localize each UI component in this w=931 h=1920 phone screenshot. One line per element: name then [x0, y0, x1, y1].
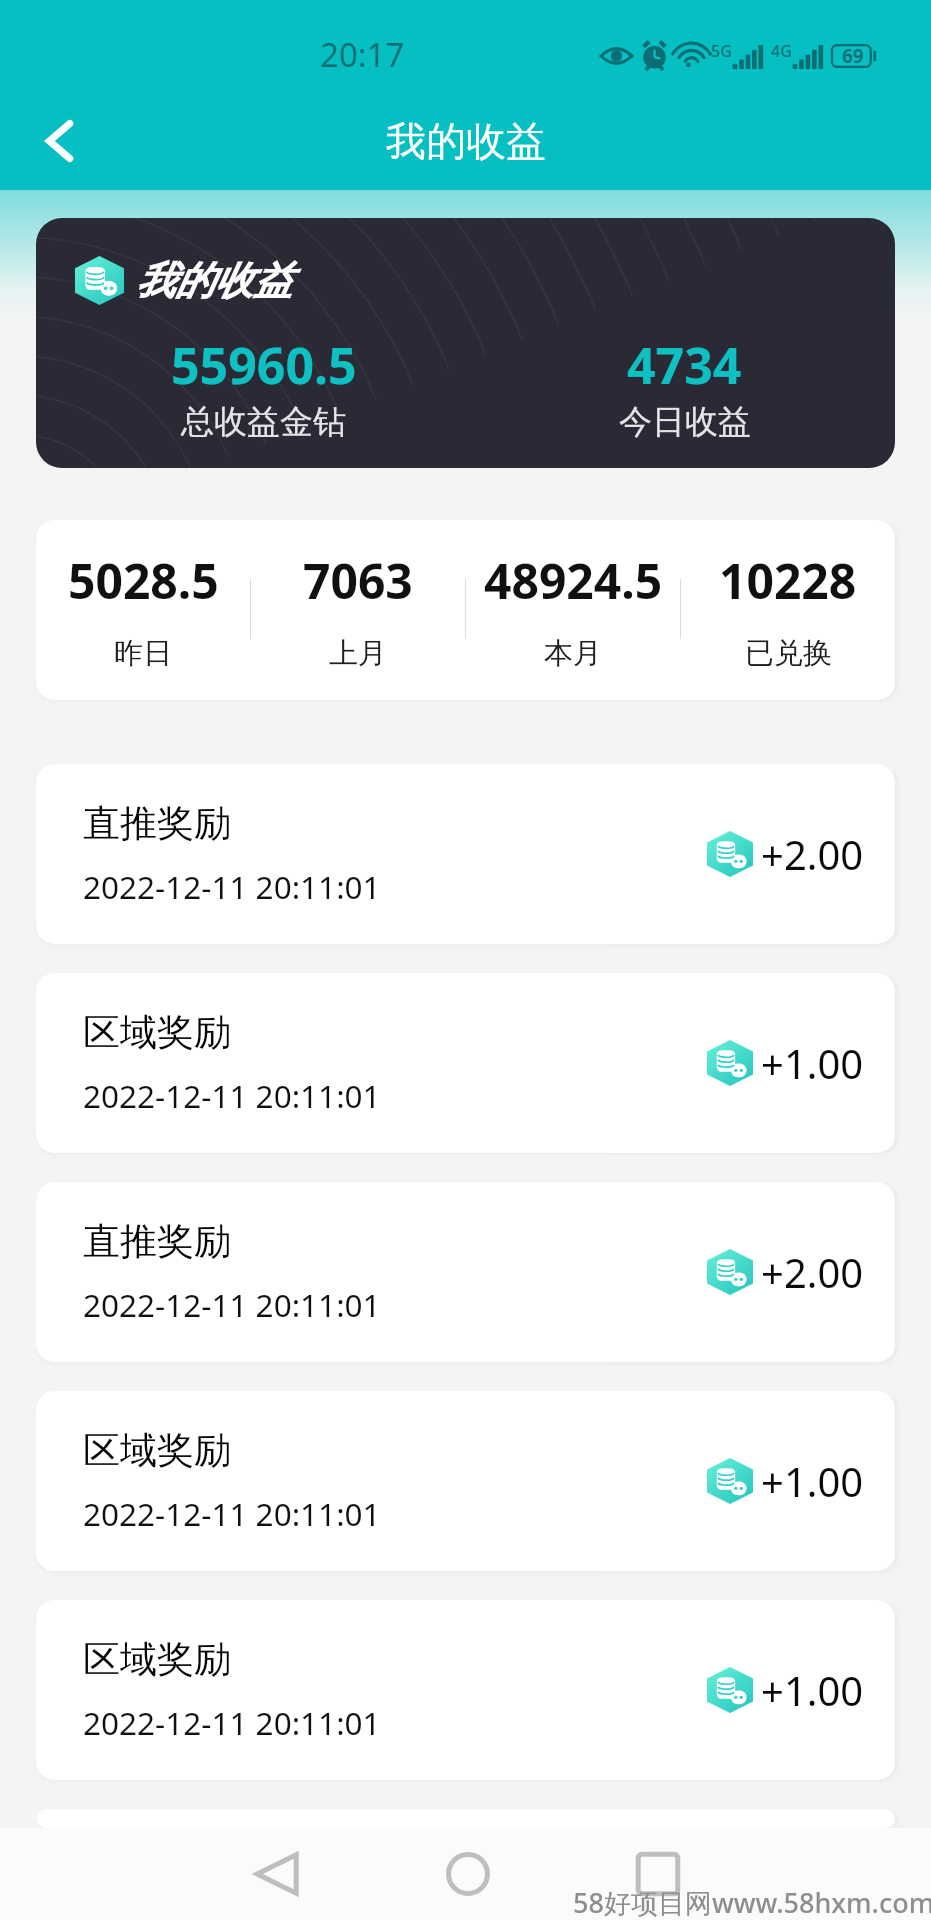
staticText: 2022-12-11 20:11:01 [83, 1074, 381, 1117]
staticText: 区域奖励 [83, 1427, 231, 1474]
staticText: +2.00 [761, 827, 864, 881]
staticText: 直推奖励 [83, 800, 231, 847]
staticText: 直推奖励 [83, 1218, 231, 1265]
staticText: 7063 [303, 548, 413, 613]
staticText: 昨日 [114, 635, 172, 672]
staticText: 本月 [544, 635, 602, 672]
staticText: 上月 [329, 635, 387, 672]
staticText: 4734 [627, 331, 742, 399]
staticText: 48924.5 [484, 548, 663, 613]
staticText: 5028.5 [68, 548, 219, 613]
staticText: 4G [771, 40, 792, 62]
staticText: 今日收益 [619, 401, 751, 443]
staticText: 总收益金钻 [181, 401, 346, 443]
staticText: 2022-12-11 20:11:01 [83, 1701, 381, 1744]
staticText: 20:17 [320, 32, 405, 77]
staticText: +1.00 [761, 1036, 864, 1090]
staticText: 10228 [719, 548, 857, 613]
staticText: 2022-12-11 20:11:01 [83, 865, 381, 908]
button[interactable]: 区域奖励 [36, 1600, 895, 1780]
staticText: +2.00 [761, 1245, 864, 1299]
staticText: 我的收益 [136, 256, 292, 305]
button[interactable]: 直推奖励 [36, 764, 895, 944]
button[interactable]: 直推奖励 [36, 1182, 895, 1362]
staticText: +1.00 [761, 1663, 864, 1717]
button[interactable]: 区域奖励 [36, 973, 895, 1153]
button[interactable]: Back [22, 103, 98, 179]
staticText: 58好项目网www.58hxm.com [573, 1884, 931, 1920]
button[interactable]: Home [438, 1844, 498, 1904]
button[interactable]: 区域奖励 [36, 1391, 895, 1571]
staticText: 5G [711, 40, 732, 62]
staticText: 区域奖励 [83, 1636, 231, 1683]
staticText: 已兑换 [745, 635, 832, 672]
button[interactable]: Back [247, 1844, 307, 1904]
staticText: 55960.5 [171, 331, 357, 399]
staticText: +1.00 [761, 1454, 864, 1508]
button[interactable]: Recent apps [628, 1844, 688, 1904]
staticText: 我的收益 [386, 116, 546, 166]
staticText: 2022-12-11 20:11:01 [83, 1492, 381, 1535]
staticText: 2022-12-11 20:11:01 [83, 1283, 381, 1326]
staticText: 69 [842, 43, 864, 69]
staticText: 区域奖励 [83, 1009, 231, 1056]
